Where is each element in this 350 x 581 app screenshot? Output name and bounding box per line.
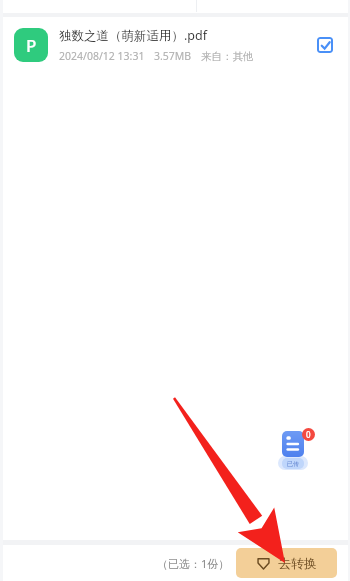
staticText: 已传: [287, 460, 299, 468]
staticText: 2024/08/12 13:31: [59, 49, 145, 63]
staticText: （已选：1份）: [157, 556, 230, 571]
button[interactable]: 去转换: [236, 548, 337, 578]
staticText: 3.57MB: [154, 49, 192, 63]
staticText: 独数之道（萌新适用）.pdf: [59, 27, 208, 44]
button[interactable]: Uploaded files: [272, 428, 314, 470]
staticText: 来自：其他: [201, 50, 254, 63]
staticText: 去转换: [278, 555, 317, 571]
staticText: 0: [306, 429, 311, 440]
button[interactable]: P: [0, 17, 350, 73]
staticText: P: [26, 34, 37, 57]
button[interactable]: Selected: [312, 32, 338, 58]
